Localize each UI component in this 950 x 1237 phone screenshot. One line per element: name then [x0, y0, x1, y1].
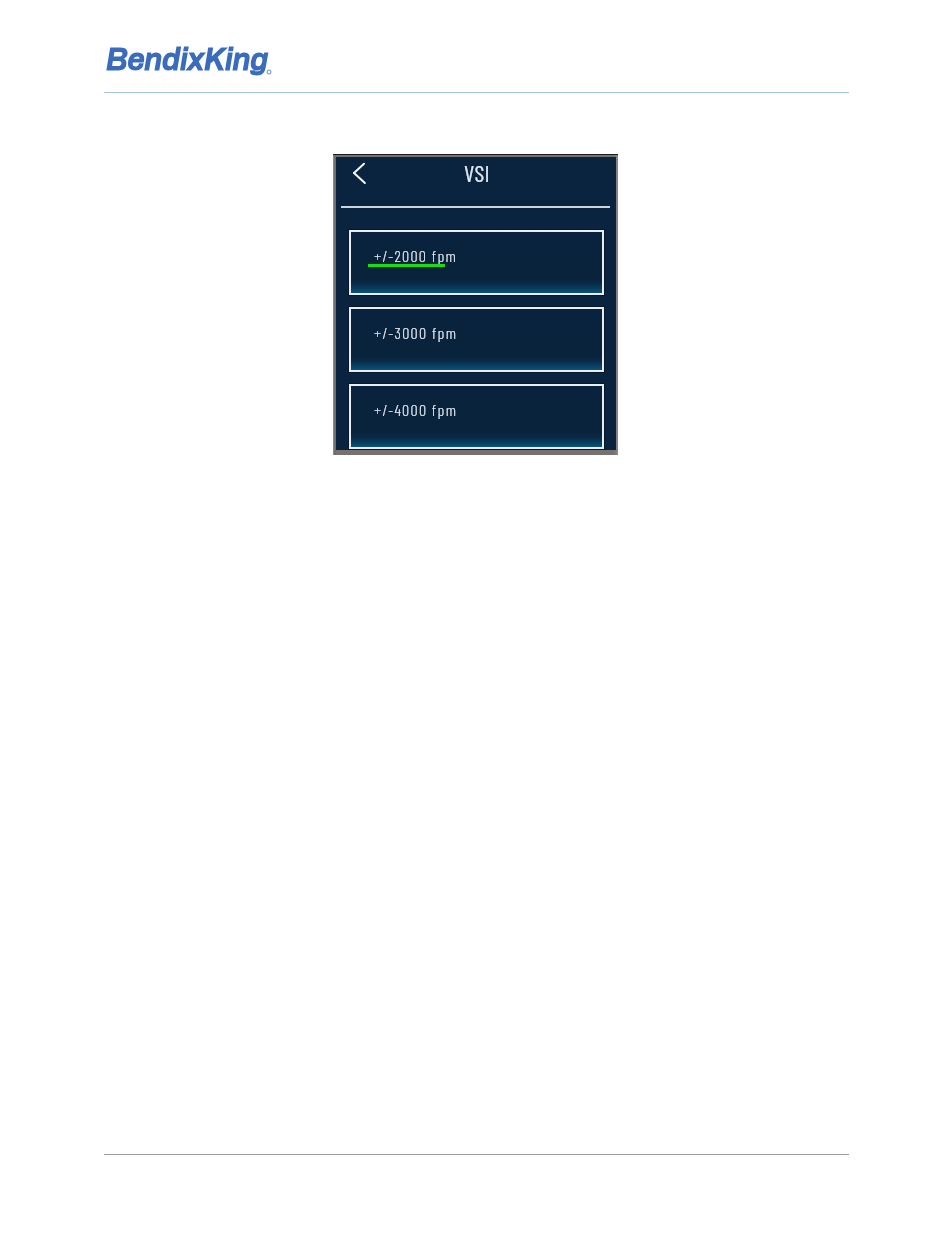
staticText: BendixKing — [106, 43, 269, 76]
staticText: VSI — [464, 158, 490, 186]
button[interactable]: Back — [344, 157, 374, 190]
staticText: +/-3000 fpm — [374, 323, 458, 342]
button[interactable]: +/-2000 fpm — [349, 230, 604, 295]
staticText: +/-4000 fpm — [374, 400, 458, 419]
button[interactable]: +/-4000 fpm — [349, 384, 604, 449]
staticText: +/-2000 fpm — [374, 246, 458, 265]
button[interactable]: +/-3000 fpm — [349, 307, 604, 372]
